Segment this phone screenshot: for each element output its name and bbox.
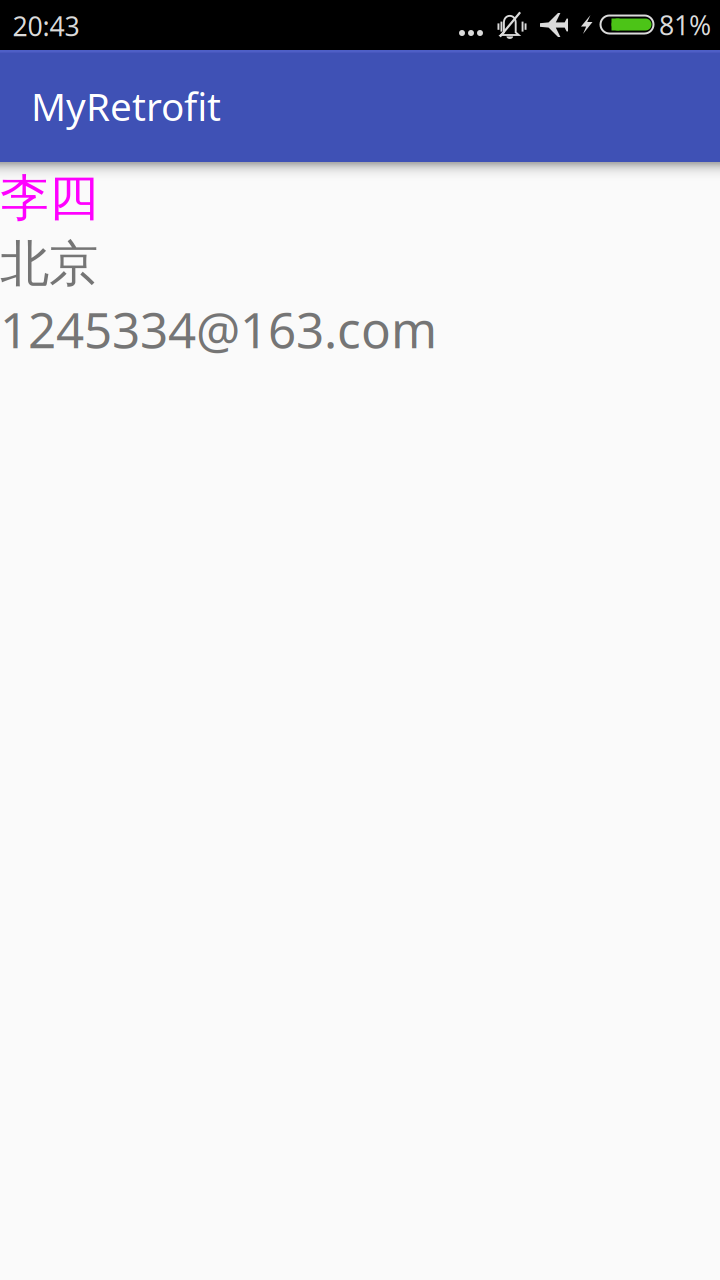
button[interactable]: MyRetrofit [0, 50, 720, 162]
staticText: 81% [659, 7, 711, 43]
staticText: 北京 [0, 234, 98, 294]
button[interactable]: 1245334@163.com [0, 296, 720, 362]
staticText: 1245334@163.com [0, 296, 437, 362]
staticText: 李四 [0, 168, 98, 228]
staticText: MyRetrofit [31, 80, 221, 132]
button[interactable]: 北京 [0, 232, 720, 296]
button[interactable]: 李四 [0, 164, 720, 232]
staticText: 20:43 [12, 8, 79, 44]
